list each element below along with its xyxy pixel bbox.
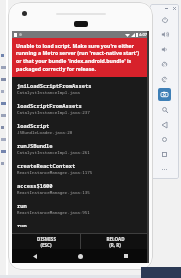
staticText: loadScriptFromAssets bbox=[17, 102, 82, 109]
button[interactable]: loadScript bbox=[17, 122, 144, 142]
button[interactable]: run bbox=[17, 202, 144, 222]
staticText: CatalystInstanceImpl.java:261 bbox=[17, 150, 90, 156]
button[interactable]: DISMISS bbox=[12, 234, 80, 249]
button[interactable]: Close bbox=[172, 6, 176, 10]
staticText: runJSBundle bbox=[17, 142, 53, 149]
button[interactable]: createReactContext bbox=[17, 162, 144, 182]
staticText: Unable to load script. Make sure you're … bbox=[16, 42, 143, 72]
staticText: loadScript bbox=[17, 122, 50, 129]
button[interactable]: loadScriptFromAssets bbox=[17, 102, 144, 122]
staticText: CatalystInstanceImpl.java bbox=[17, 90, 80, 96]
button[interactable]: Recent apps bbox=[103, 249, 149, 263]
staticText: (ESC) bbox=[40, 242, 52, 248]
button[interactable]: Back bbox=[158, 118, 171, 131]
button[interactable]: access$1600 bbox=[17, 182, 144, 202]
button[interactable]: Home bbox=[57, 249, 103, 263]
button[interactable]: Zoom bbox=[158, 103, 171, 116]
button[interactable]: Take screenshot bbox=[158, 88, 171, 101]
staticText: ReactInstanceManager.java:135 bbox=[17, 190, 90, 196]
staticText: (R, R) bbox=[109, 242, 121, 248]
button[interactable]: Rotate right bbox=[158, 73, 171, 86]
button[interactable]: RELOAD bbox=[81, 234, 149, 249]
staticText: ReactInstanceManager.java:951 bbox=[17, 210, 90, 216]
staticText: run bbox=[17, 222, 27, 227]
button[interactable]: Rotate left bbox=[158, 58, 171, 71]
button[interactable]: Overview bbox=[158, 148, 171, 161]
button[interactable]: run bbox=[17, 222, 144, 233]
staticText: DISMISS bbox=[37, 236, 56, 242]
button[interactable]: Back bbox=[12, 249, 57, 263]
staticText: jniLoadScriptFromAssets bbox=[17, 82, 92, 89]
button[interactable]: Power bbox=[158, 13, 171, 26]
button[interactable]: Home bbox=[158, 133, 171, 146]
staticText: ReactInstanceManager.java:1175 bbox=[17, 170, 93, 176]
staticText: RELOAD bbox=[106, 236, 125, 242]
button[interactable]: Volume down bbox=[158, 43, 171, 56]
staticText: createReactContext bbox=[17, 162, 76, 169]
staticText: JSBundleLoader.java:28 bbox=[17, 130, 73, 136]
button[interactable]: More bbox=[158, 163, 171, 176]
button[interactable]: runJSBundle bbox=[17, 142, 144, 162]
button[interactable]: Volume up bbox=[158, 28, 171, 41]
staticText: 4:07 bbox=[139, 32, 147, 37]
staticText: CatalystInstanceImpl.java:237 bbox=[17, 110, 90, 116]
staticText: run bbox=[17, 202, 27, 209]
button[interactable]: jniLoadScriptFromAssets bbox=[17, 82, 144, 102]
staticText: access$1600 bbox=[17, 182, 53, 189]
